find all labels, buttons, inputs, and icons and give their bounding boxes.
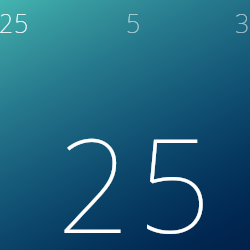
staticText: 3 <box>235 6 250 40</box>
button[interactable]: Day 5 <box>126 6 142 40</box>
button[interactable]: Day 25 <box>0 6 30 40</box>
button[interactable]: 25 <box>57 95 219 250</box>
staticText: 5 <box>126 6 142 40</box>
button[interactable]: Day 3 <box>235 6 250 40</box>
staticText: 25 <box>0 6 30 40</box>
staticText: 25 <box>57 95 219 250</box>
